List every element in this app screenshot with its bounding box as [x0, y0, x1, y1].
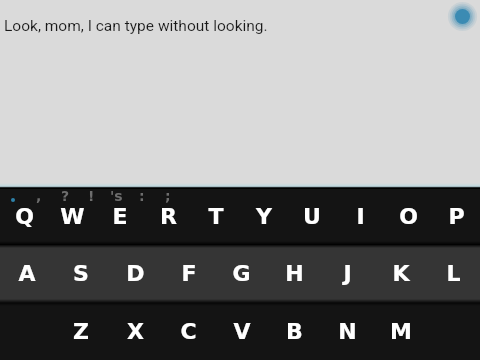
button[interactable]: P	[432, 189, 480, 245]
button[interactable]: E	[96, 189, 144, 245]
button[interactable]: Z	[54, 303, 108, 360]
staticText: J	[343, 261, 352, 287]
staticText: F	[181, 261, 197, 287]
staticText: T	[208, 204, 224, 230]
staticText: W	[60, 204, 85, 230]
staticText: Z	[73, 319, 89, 345]
staticText: 's	[110, 188, 123, 204]
button[interactable]: G	[215, 245, 268, 303]
staticText: E	[112, 204, 128, 230]
staticText: K	[392, 261, 410, 287]
staticText: Q	[15, 204, 34, 230]
staticText: I	[356, 204, 365, 230]
staticText: ,	[36, 188, 42, 204]
button[interactable]: I	[336, 189, 384, 245]
staticText: Y	[256, 204, 272, 230]
button[interactable]: !	[79, 186, 103, 206]
staticText: G	[232, 261, 251, 287]
button[interactable]: 's	[104, 186, 128, 206]
button[interactable]: U	[288, 189, 336, 245]
button[interactable]: L	[427, 245, 480, 303]
staticText: :	[139, 188, 145, 204]
button[interactable]: ?	[53, 186, 77, 206]
staticText: O	[399, 204, 418, 230]
staticText: !	[88, 188, 95, 204]
staticText: M	[390, 319, 412, 345]
staticText: H	[285, 261, 304, 287]
staticText: ;	[165, 188, 171, 204]
button[interactable]: ;	[156, 186, 180, 206]
staticText: B	[286, 319, 303, 345]
button[interactable]: T	[192, 189, 240, 245]
button[interactable]: F	[162, 245, 215, 303]
staticText: Look, mom, I can type without looking.	[4, 17, 268, 35]
button[interactable]: Y	[240, 189, 288, 245]
button[interactable]: Q	[0, 189, 48, 245]
staticText: X	[127, 319, 144, 345]
staticText: A	[18, 261, 36, 287]
staticText: N	[338, 319, 357, 345]
staticText: D	[126, 261, 145, 287]
button[interactable]: O	[384, 189, 432, 245]
button[interactable]: Voice input	[447, 1, 478, 32]
button[interactable]: J	[321, 245, 374, 303]
button[interactable]: K	[374, 245, 427, 303]
button[interactable]: V	[215, 303, 268, 360]
button[interactable]: A	[0, 245, 54, 303]
button[interactable]: ,	[27, 186, 51, 206]
button[interactable]: S	[54, 245, 108, 303]
button[interactable]: M	[374, 303, 427, 360]
staticText: U	[303, 204, 321, 230]
staticText: L	[446, 261, 461, 287]
other: Insert period	[1, 186, 25, 206]
button[interactable]: C	[162, 303, 215, 360]
button[interactable]: N	[321, 303, 374, 360]
button[interactable]: Insert period	[1, 186, 25, 206]
staticText: ?	[61, 188, 70, 204]
staticText: R	[160, 204, 177, 230]
button[interactable]: D	[108, 245, 162, 303]
button[interactable]: H	[268, 245, 321, 303]
button[interactable]: B	[268, 303, 321, 360]
staticText: P	[448, 204, 465, 230]
button[interactable]: W	[48, 189, 96, 245]
staticText: V	[233, 319, 251, 345]
button[interactable]: R	[144, 189, 192, 245]
staticText: C	[180, 319, 197, 345]
button[interactable]: :	[130, 186, 154, 206]
staticText: S	[73, 261, 89, 287]
button[interactable]: X	[108, 303, 162, 360]
